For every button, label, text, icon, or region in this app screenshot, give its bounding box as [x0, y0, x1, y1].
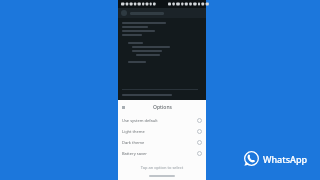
button[interactable]: Use system default [118, 115, 206, 126]
staticText: Dark theme [122, 140, 197, 145]
button[interactable]: Account [121, 10, 127, 16]
button[interactable]: Dark theme [118, 137, 206, 148]
button[interactable]: Battery saver [118, 148, 206, 159]
staticText: Battery saver [122, 151, 197, 156]
staticText: Options [153, 104, 172, 111]
button[interactable]: Light theme [118, 126, 206, 137]
staticText: WhatsApp [263, 153, 308, 165]
staticText: Use system default [122, 118, 197, 123]
staticText: Tap an option to select [118, 165, 206, 170]
staticText: Light theme [122, 129, 197, 134]
button[interactable]: WhatsApp [244, 151, 308, 166]
